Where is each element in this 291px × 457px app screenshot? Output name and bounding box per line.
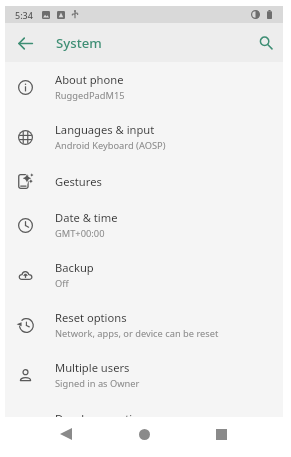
staticText: Network, apps, or device can be reset [55,327,219,340]
button[interactable]: Recent apps [200,417,242,457]
staticText: Multiple users [55,360,130,375]
staticText: About phone [55,72,124,87]
staticText: Languages & input [55,122,155,137]
staticText: System [56,34,102,52]
button[interactable]: Date & time [5,200,283,250]
staticText: Backup [55,260,94,275]
staticText: Gestures [55,174,102,189]
staticText: 5:34 [15,9,33,21]
button[interactable]: Back [45,417,87,457]
staticText: Android Keyboard (AOSP) [55,139,166,152]
button[interactable]: Backup [5,250,283,300]
button[interactable]: Navigate up [12,30,38,56]
button[interactable]: Reset options [5,300,283,350]
button[interactable]: Gestures [5,162,283,200]
button[interactable]: Developer options [5,401,283,417]
staticText: RuggedPadM15 [55,89,125,102]
button[interactable]: Languages & input [5,112,283,162]
staticText: Off [55,277,69,290]
staticText: Developer options [55,411,152,417]
staticText: Signed in as Owner [55,377,140,390]
staticText: Reset options [55,310,127,325]
button[interactable]: Home [123,417,165,457]
staticText: Date & time [55,210,118,225]
button[interactable]: About phone [5,62,283,112]
button[interactable]: Multiple users [5,350,283,400]
staticText: GMT+00:00 [55,227,105,240]
button[interactable]: Search [253,30,279,56]
